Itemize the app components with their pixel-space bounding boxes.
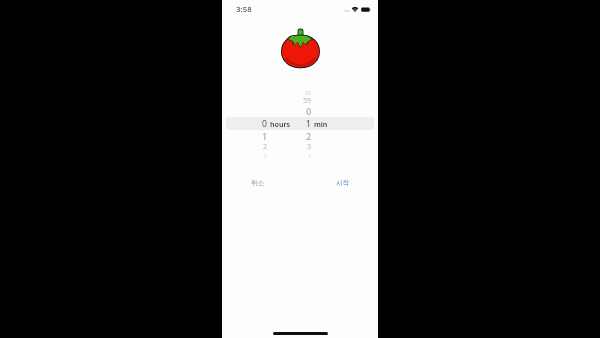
staticText: 1 <box>262 131 267 142</box>
staticText: 2 <box>306 131 311 142</box>
button[interactable]: 1 <box>291 117 311 130</box>
button[interactable]: 취소 <box>244 176 272 190</box>
staticText: 58 <box>305 89 311 96</box>
staticText: 시작 <box>336 179 350 187</box>
button[interactable] <box>226 117 374 130</box>
staticText: 취소 <box>251 179 265 187</box>
button[interactable]: 0 <box>247 117 267 130</box>
staticText: 1 <box>306 118 311 130</box>
staticText: 4 <box>308 152 311 159</box>
staticText: 0 <box>306 106 311 117</box>
staticText: 59 <box>302 95 311 105</box>
staticText: min <box>314 119 328 129</box>
staticText: 3:58 <box>236 4 252 15</box>
staticText: 3 <box>264 152 267 159</box>
staticText: 3 <box>306 141 311 151</box>
staticText: hours <box>270 119 291 129</box>
button[interactable]: 시작 <box>329 176 357 190</box>
staticText: 2 <box>262 141 267 151</box>
staticText: 0 <box>262 118 267 130</box>
